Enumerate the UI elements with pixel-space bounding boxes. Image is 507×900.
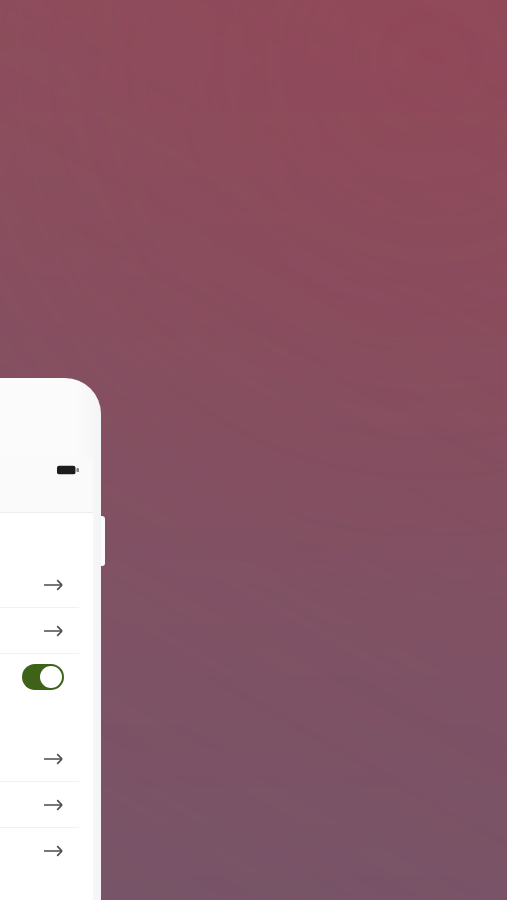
button[interactable]: Toggle setting (0, 654, 79, 699)
other: Open (43, 797, 64, 813)
button[interactable]: Open (0, 562, 79, 607)
other: Open (43, 843, 64, 859)
other: Open (43, 751, 64, 767)
other: Open (43, 623, 64, 639)
button[interactable]: Open (0, 608, 79, 653)
button[interactable]: Open (0, 736, 79, 781)
button[interactable]: Toggle setting (22, 664, 64, 690)
other: Open (43, 577, 64, 593)
button[interactable]: Open (0, 782, 79, 827)
button[interactable]: Open (0, 828, 79, 873)
